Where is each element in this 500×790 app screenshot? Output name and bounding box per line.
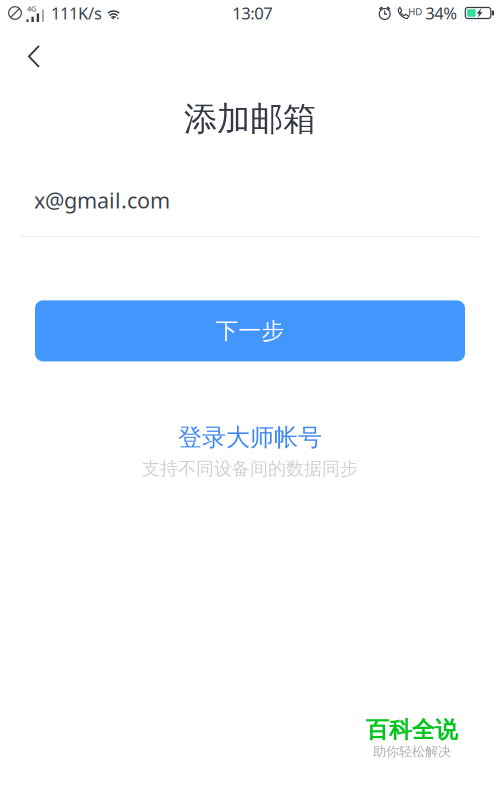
staticText: 支持不同设备间的数据同步 bbox=[142, 457, 358, 480]
staticText: 助你轻松解决 bbox=[373, 743, 451, 760]
staticText: 13:07 bbox=[232, 2, 272, 24]
staticText: HD bbox=[408, 5, 422, 18]
staticText: x@gmail.com bbox=[34, 185, 170, 215]
button[interactable]: Back bbox=[0, 26, 66, 80]
button[interactable]: 下一步 bbox=[35, 300, 465, 361]
staticText: 下一步 bbox=[215, 317, 284, 345]
staticText: 登录大师帐号 bbox=[178, 422, 322, 452]
staticText: 添加邮箱 bbox=[184, 98, 316, 140]
button[interactable]: 登录大师帐号 bbox=[178, 424, 322, 450]
staticText: 百科全说 bbox=[366, 716, 458, 744]
staticText: 34% bbox=[425, 2, 457, 24]
staticText: 4G bbox=[27, 3, 36, 14]
staticText: 111K/s bbox=[51, 2, 102, 24]
